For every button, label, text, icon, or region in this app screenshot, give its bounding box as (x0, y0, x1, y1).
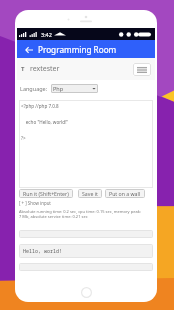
staticText: Programming Room (38, 44, 117, 55)
staticText: rextester (30, 64, 60, 74)
staticText: <?php //php 7.0.8 (21, 103, 59, 109)
staticText: Hello, world! (23, 248, 63, 255)
staticText: Save it (82, 190, 98, 197)
button[interactable]: Back (22, 43, 35, 56)
staticText: echo "Hello, world!" (21, 119, 69, 125)
button[interactable]: Run it (Shift+Enter) (19, 189, 73, 198)
staticText: 3:42 (41, 31, 52, 38)
button[interactable]: Put on a wall (105, 189, 145, 198)
staticText: Absolute running time: 0.2 sec, cpu time… (19, 209, 143, 219)
button[interactable]: Php (51, 84, 98, 93)
staticText: T (21, 65, 25, 73)
button[interactable]: [ + ] Show input (19, 200, 155, 206)
button[interactable]: Save it (78, 189, 102, 198)
staticText: ?> (21, 135, 26, 141)
staticText: Php (53, 85, 64, 92)
button[interactable]: Menu (133, 63, 151, 76)
staticText: Run it (Shift+Enter) (23, 190, 69, 197)
staticText: Put on a wall (109, 190, 141, 197)
staticText: [ + ] Show input (19, 200, 51, 206)
staticText: Language: (20, 85, 48, 92)
